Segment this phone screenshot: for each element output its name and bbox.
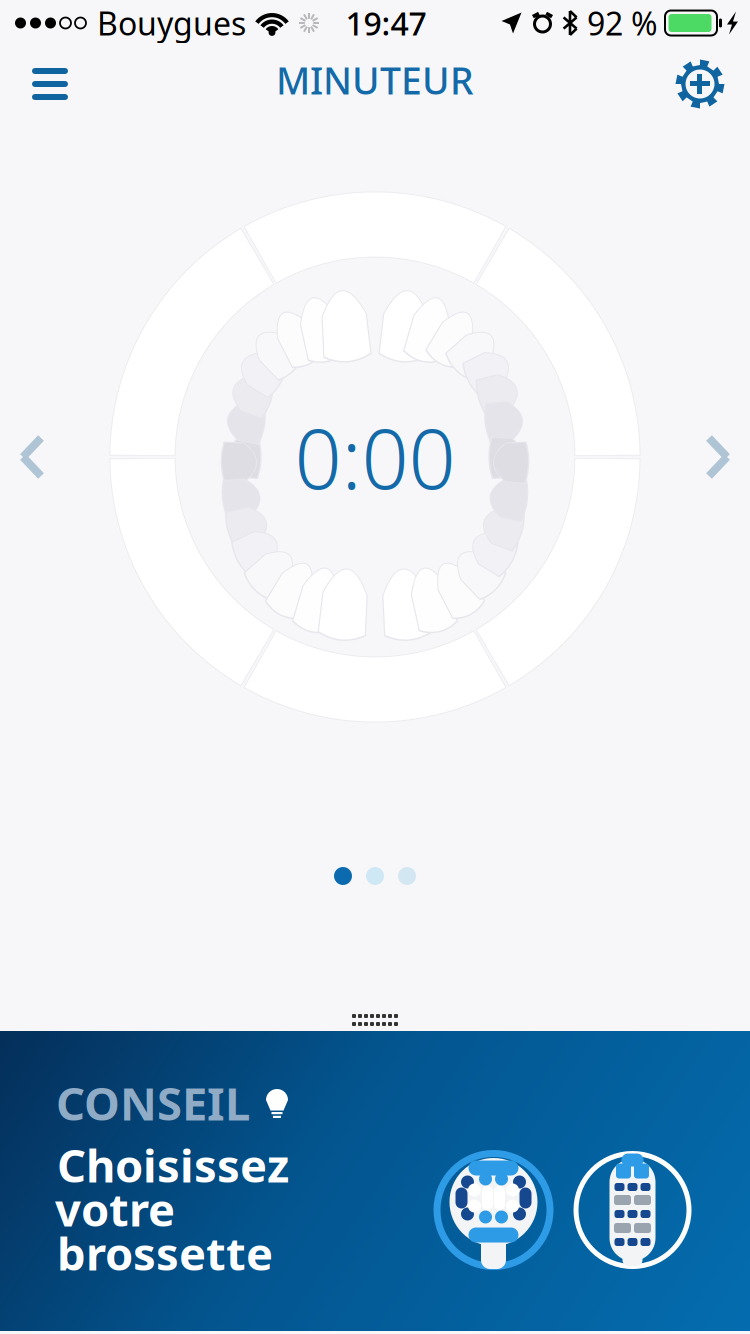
button[interactable]: Settings [658,43,742,125]
button[interactable]: Flat brush head [572,1150,692,1270]
button[interactable]: Next [686,415,750,499]
button[interactable]: Menu [8,43,92,125]
staticText: 0:00 [294,402,455,512]
staticText: brossette [57,1223,273,1283]
staticText: Bouygues [97,2,246,44]
staticText: votre [55,1179,175,1239]
button[interactable]: Previous [0,415,64,499]
button[interactable]: Round brush head [433,1150,553,1270]
staticText: 19:47 [345,2,426,44]
staticText: Choisissez [57,1135,289,1195]
staticText: 92 % [587,2,658,44]
staticText: CONSEIL [56,1073,250,1133]
staticText: MINUTEUR [276,55,474,105]
